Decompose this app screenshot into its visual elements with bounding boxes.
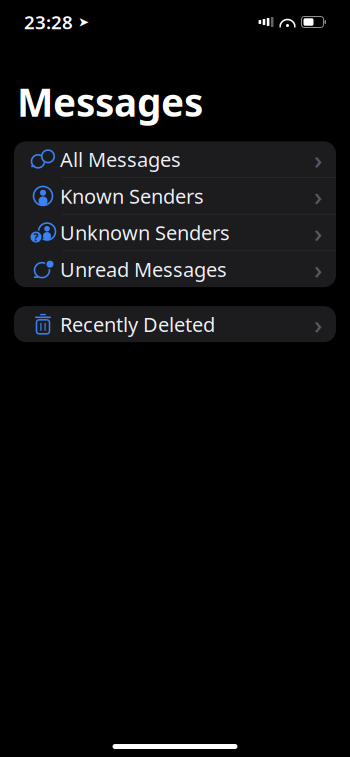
staticText: Known Senders bbox=[60, 183, 204, 209]
staticText: All Messages bbox=[60, 146, 181, 173]
button[interactable]: Recently Deleted bbox=[14, 306, 336, 342]
button[interactable]: Known Senders bbox=[14, 178, 336, 214]
staticText: › bbox=[314, 142, 322, 176]
staticText: Messages bbox=[17, 76, 203, 127]
staticText: › bbox=[314, 252, 322, 286]
staticText: ➤ bbox=[78, 14, 89, 29]
button[interactable]: ? bbox=[14, 214, 336, 251]
button[interactable]: All Messages bbox=[14, 141, 336, 178]
staticText: Unread Messages bbox=[60, 256, 227, 282]
staticText: › bbox=[314, 307, 322, 341]
staticText: › bbox=[314, 216, 322, 249]
staticText: 23:28 bbox=[24, 10, 73, 34]
staticText: Unknown Senders bbox=[60, 219, 230, 246]
staticText: › bbox=[314, 179, 322, 213]
staticText: ? bbox=[33, 230, 38, 244]
button[interactable]: Unread Messages bbox=[14, 251, 336, 287]
staticText: Recently Deleted bbox=[60, 311, 215, 337]
